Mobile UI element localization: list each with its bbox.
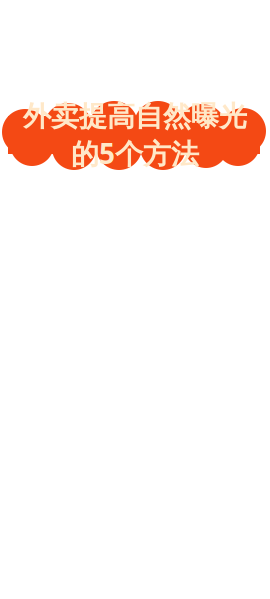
staticText: 外卖提高自然曝光 (23, 99, 247, 134)
button[interactable]: 外卖提高自然曝光 (0, 100, 270, 170)
staticText: 的5个方法 (71, 135, 199, 172)
